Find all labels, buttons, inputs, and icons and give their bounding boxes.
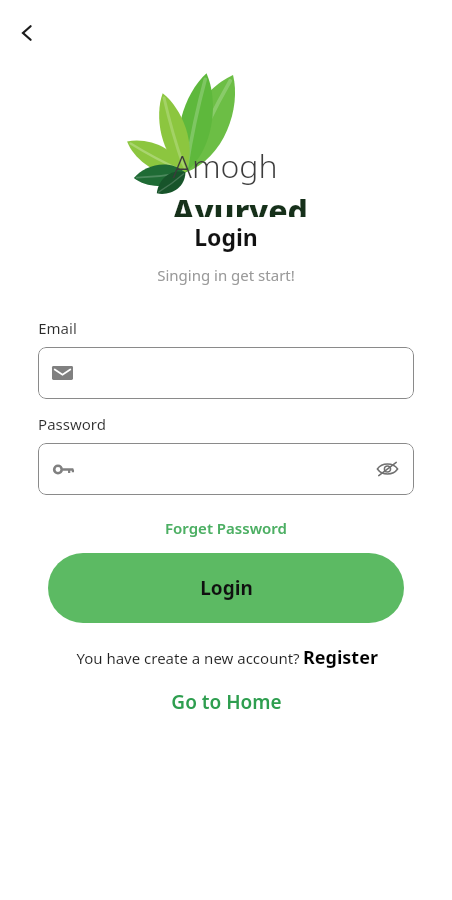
staticText: Go to Home [171, 689, 282, 715]
staticText: Email [38, 318, 77, 338]
button[interactable]: Register [302, 645, 379, 670]
staticText: You have create a new account? [74, 648, 302, 668]
staticText: Forget Password [165, 518, 287, 538]
button[interactable] [38, 347, 414, 399]
staticText: Register [303, 645, 378, 670]
button[interactable]: Forget Password [159, 516, 293, 540]
staticText: Login [200, 575, 253, 601]
button[interactable]: Back [10, 16, 44, 50]
staticText: Ayurved [172, 189, 308, 217]
staticText: Amogh [172, 144, 278, 188]
button[interactable]: Login [48, 553, 404, 623]
staticText: Password [38, 414, 106, 434]
staticText: Singing in get start! [157, 265, 295, 285]
button[interactable]: Show password [374, 456, 400, 482]
staticText: Login [194, 221, 258, 252]
button[interactable]: Show password [38, 443, 414, 495]
button[interactable]: Go to Home [165, 687, 288, 717]
